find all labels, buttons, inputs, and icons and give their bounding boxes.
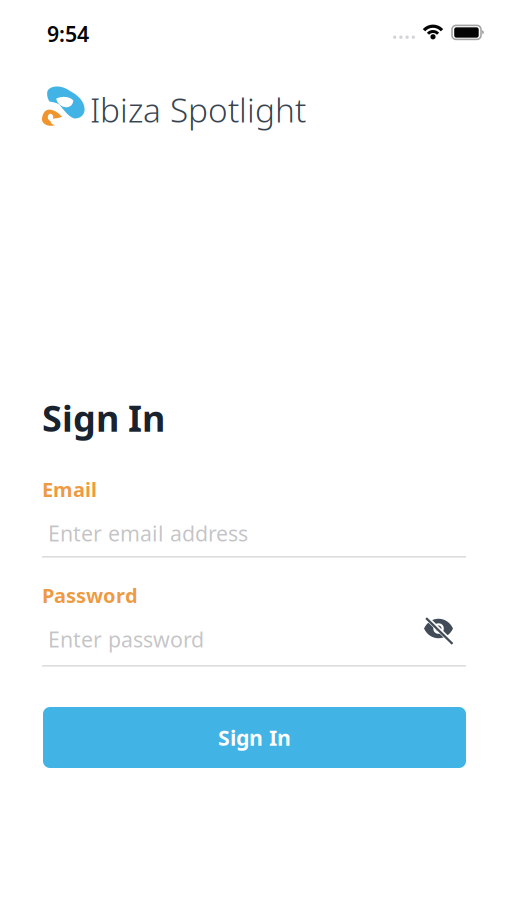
staticText: Sign In bbox=[42, 394, 165, 442]
staticText: Sign In bbox=[218, 723, 291, 752]
button[interactable]: Show password bbox=[417, 609, 461, 653]
button[interactable]: Email address field bbox=[42, 506, 466, 558]
staticText: Enter password bbox=[48, 625, 204, 653]
staticText: Email bbox=[42, 476, 97, 503]
button[interactable]: Password field bbox=[42, 612, 466, 665]
button[interactable]: Sign In bbox=[43, 707, 466, 768]
staticText: Ibiza Spotlight bbox=[90, 87, 306, 132]
staticText: Password bbox=[42, 582, 138, 609]
staticText: 9:54 bbox=[47, 19, 89, 48]
staticText: Enter email address bbox=[48, 519, 248, 547]
